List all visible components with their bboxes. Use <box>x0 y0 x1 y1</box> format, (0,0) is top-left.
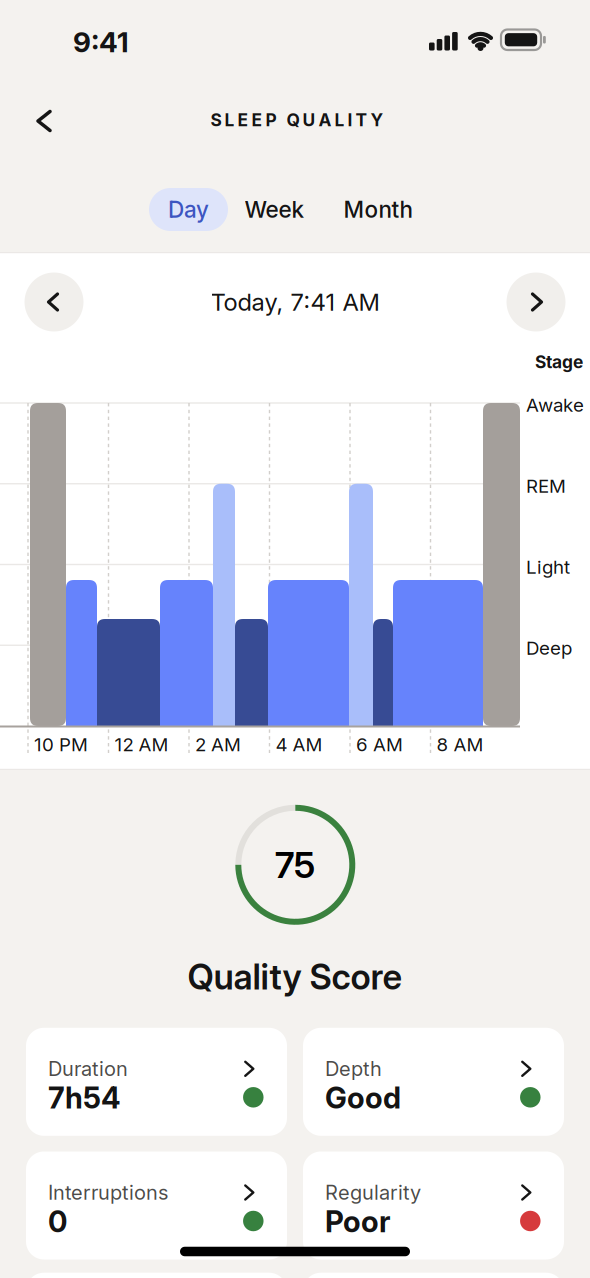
staticText: Stage <box>535 352 583 372</box>
button[interactable]: Day <box>149 188 228 231</box>
button[interactable]: Next day <box>506 272 565 331</box>
button[interactable]: Month <box>332 188 424 231</box>
button[interactable]: Duration <box>26 1028 287 1136</box>
staticText: Duration <box>48 1057 128 1081</box>
staticText: 2 AM <box>195 733 241 755</box>
staticText: 8 AM <box>436 733 483 755</box>
staticText: Week <box>244 196 304 223</box>
staticText: Good <box>325 1080 401 1115</box>
button[interactable]: Week <box>234 188 314 231</box>
staticText: Quality Score <box>187 957 402 997</box>
staticText: Regularity <box>325 1181 421 1204</box>
staticText: Interruptions <box>48 1181 168 1204</box>
staticText: 75 <box>275 844 316 886</box>
staticText: REM <box>526 475 566 497</box>
staticText: Depth <box>325 1057 382 1081</box>
staticText: Awake <box>526 394 584 416</box>
button[interactable]: Back <box>24 99 64 143</box>
staticText: 10 PM <box>34 733 88 755</box>
staticText: Today, 7:41 AM <box>210 288 379 316</box>
staticText: Day <box>168 196 209 223</box>
staticText: 9:41 <box>73 25 129 58</box>
staticText: 6 AM <box>356 733 403 755</box>
staticText: 4 AM <box>275 733 322 755</box>
button[interactable]: Regularity <box>303 1151 564 1259</box>
staticText: 7h54 <box>48 1080 121 1115</box>
staticText: Deep <box>526 637 572 659</box>
staticText: Month <box>343 196 412 223</box>
button[interactable]: Depth <box>303 1028 564 1136</box>
staticText: S L E E P Q U A L I T Y <box>210 110 383 130</box>
staticText: Light <box>526 556 570 578</box>
staticText: 12 AM <box>114 733 168 755</box>
button[interactable]: Interruptions <box>26 1151 287 1259</box>
staticText: 0 <box>48 1204 67 1239</box>
staticText: Poor <box>325 1204 391 1239</box>
button[interactable]: Previous day <box>24 272 83 331</box>
